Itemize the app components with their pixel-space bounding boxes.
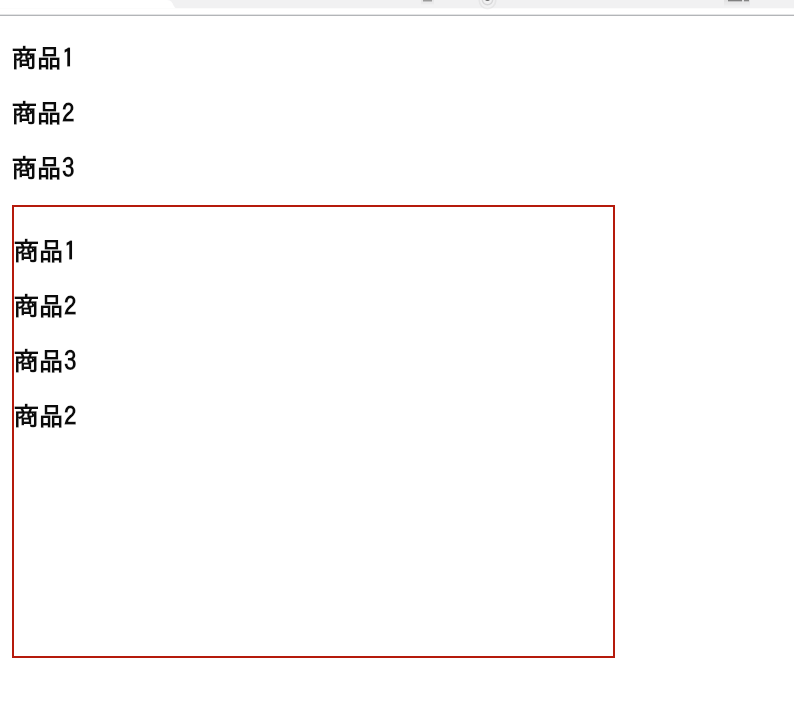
staticText: 商品2 xyxy=(14,403,77,428)
button[interactable]: 商品3 xyxy=(12,145,782,189)
button[interactable]: 商品1 xyxy=(12,35,782,79)
button[interactable]: 商品2 xyxy=(14,283,612,327)
staticText: 商品3 xyxy=(14,348,77,373)
button[interactable]: 商品1 xyxy=(14,228,612,272)
other: Browser tab strip xyxy=(0,0,794,16)
staticText: 商品1 xyxy=(14,238,77,263)
staticText: 商品1 xyxy=(12,45,75,70)
staticText: 商品2 xyxy=(12,100,75,125)
button[interactable]: 商品3 xyxy=(14,338,612,382)
staticText: 商品3 xyxy=(12,155,75,180)
staticText: 商品2 xyxy=(14,293,77,318)
button[interactable]: 商品2 xyxy=(14,393,612,437)
button[interactable]: 商品2 xyxy=(12,90,782,134)
